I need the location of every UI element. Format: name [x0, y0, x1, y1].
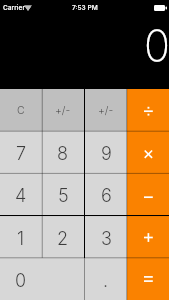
staticText: .: [103, 270, 109, 292]
button[interactable]: 4: [0, 173, 42, 215]
staticText: 7: [16, 143, 27, 165]
button[interactable]: 0: [0, 258, 85, 300]
staticText: 2: [57, 228, 69, 250]
button[interactable]: Multiply: [127, 131, 169, 173]
staticText: 7:53 PM: [72, 4, 98, 12]
button[interactable]: 3: [85, 216, 127, 258]
staticText: 6: [101, 185, 112, 207]
button[interactable]: 7: [0, 131, 42, 173]
button[interactable]: Divide: [127, 89, 169, 131]
button[interactable]: C: [0, 89, 42, 131]
staticText: 4: [15, 185, 27, 207]
staticText: 8: [57, 143, 69, 165]
staticText: +/-: [98, 104, 114, 117]
button[interactable]: .: [85, 258, 127, 300]
button[interactable]: Add: [127, 216, 169, 258]
staticText: 5: [58, 185, 69, 207]
button[interactable]: Subtract: [127, 173, 169, 215]
staticText: 9: [101, 143, 112, 165]
staticText: +/-: [55, 104, 71, 117]
button[interactable]: +/-: [42, 89, 84, 131]
button[interactable]: 6: [85, 173, 127, 215]
button[interactable]: Equals: [127, 258, 169, 300]
button[interactable]: 5: [42, 173, 84, 215]
button[interactable]: 2: [42, 216, 84, 258]
staticText: 1: [17, 228, 25, 250]
button[interactable]: 9: [85, 131, 127, 173]
staticText: 0: [15, 270, 27, 292]
button[interactable]: 8: [42, 131, 84, 173]
staticText: 3: [101, 228, 112, 250]
staticText: C: [17, 104, 25, 117]
button[interactable]: 1: [0, 216, 42, 258]
button[interactable]: +/-: [85, 89, 127, 131]
staticText: 0: [144, 19, 169, 71]
staticText: Carrier: [3, 4, 25, 12]
